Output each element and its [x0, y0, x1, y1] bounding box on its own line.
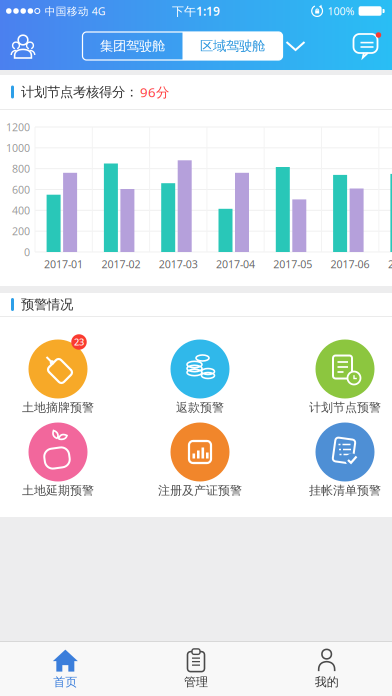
staticText: 计划节点考核得分：	[21, 84, 138, 100]
button[interactable]: 挂帐清单预警	[309, 422, 381, 499]
staticText: 返款预警	[176, 400, 224, 415]
button[interactable]: Messages	[353, 33, 381, 59]
staticText: 管理	[184, 675, 208, 689]
staticText: 计划节点预警	[309, 400, 381, 415]
staticText: 预警情况	[21, 296, 73, 313]
staticText: 2017-05	[273, 257, 312, 271]
staticText: 注册及产证预警	[158, 483, 242, 498]
staticText: 1000	[6, 141, 30, 155]
staticText: 下午1:19	[172, 3, 220, 19]
staticText: 2017-02	[101, 257, 140, 271]
staticText: 1200	[6, 120, 30, 134]
button[interactable]: Expand	[284, 37, 306, 55]
button[interactable]: 注册及产证预警	[158, 422, 242, 499]
staticText: 100%	[328, 4, 355, 18]
staticText: 2017-04	[216, 257, 255, 271]
staticText: 中国移动 4G	[45, 4, 106, 18]
staticText: 土地延期预警	[22, 483, 94, 498]
staticText: 400	[12, 203, 30, 217]
staticText: 23	[74, 336, 84, 348]
button[interactable]: 23	[22, 339, 94, 416]
staticText: 200	[12, 224, 30, 238]
staticText: 集团驾驶舱	[100, 38, 165, 54]
staticText: 挂帐清单预警	[309, 483, 381, 498]
button[interactable]: 计划节点预警	[309, 339, 381, 416]
button[interactable]: 管理	[131, 649, 261, 689]
button[interactable]: 返款预警	[170, 339, 229, 416]
button[interactable]: Contacts	[10, 33, 36, 59]
button[interactable]: 集团驾驶舱	[82, 32, 182, 60]
staticText: 我的	[315, 675, 339, 689]
button[interactable]: 首页	[0, 649, 131, 689]
staticText: 96分	[140, 83, 169, 101]
button[interactable]: 区域驾驶舱	[182, 32, 282, 60]
staticText: 区域驾驶舱	[200, 38, 265, 54]
staticText: 2017-01	[44, 257, 83, 271]
staticText: 2017-03	[159, 257, 198, 271]
staticText: 首页	[53, 675, 77, 689]
staticText: 2017-06	[331, 257, 370, 271]
staticText: 土地摘牌预警	[22, 400, 94, 415]
staticText: 800	[12, 162, 30, 176]
staticText: 600	[12, 182, 30, 197]
staticText: 2017-07	[388, 257, 392, 271]
button[interactable]: 土地延期预警	[22, 422, 94, 499]
button[interactable]: 我的	[261, 649, 392, 689]
staticText: 0	[24, 245, 30, 259]
